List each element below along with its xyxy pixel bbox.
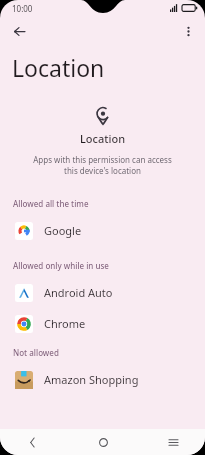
- button[interactable]: Android Auto: [0, 277, 205, 308]
- button[interactable]: Home: [91, 430, 115, 454]
- staticText: Allowed all the time: [13, 198, 89, 209]
- button[interactable]: Back: [20, 430, 44, 454]
- staticText: Chrome: [44, 316, 86, 331]
- staticText: Location: [12, 52, 105, 83]
- staticText: Allowed only while in use: [13, 260, 109, 271]
- staticText: 10:00: [12, 3, 33, 14]
- staticText: Amazon Shopping: [44, 372, 139, 387]
- staticText: Not allowed: [13, 347, 59, 358]
- button[interactable]: Amazon Shopping: [0, 364, 205, 395]
- button[interactable]: Chrome: [0, 308, 205, 339]
- staticText: Android Auto: [44, 285, 113, 300]
- staticText: Location: [80, 131, 126, 146]
- button[interactable]: Recent apps: [161, 430, 185, 454]
- staticText: Apps with this permission can access thi…: [26, 154, 179, 176]
- staticText: Google: [44, 223, 82, 238]
- button[interactable]: More options: [175, 18, 201, 44]
- button[interactable]: Back: [6, 18, 32, 44]
- button[interactable]: Google: [0, 215, 205, 246]
